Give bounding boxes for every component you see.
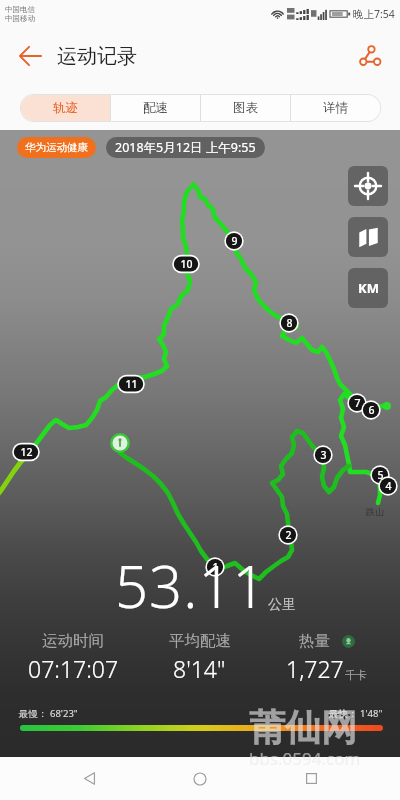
staticText: 莆仙网 <box>249 705 357 750</box>
button[interactable]: Locate <box>348 166 388 206</box>
button[interactable]: Share <box>350 36 390 76</box>
staticText: 热量 <box>299 631 330 651</box>
staticText: bbs.0594.com <box>249 747 361 770</box>
staticText: 1,727 <box>286 653 344 684</box>
staticText: 轨迹 <box>53 100 78 116</box>
button[interactable]: 轨迹 <box>21 95 110 121</box>
staticText: 运动时间 <box>42 631 104 651</box>
staticText: 运动记录 <box>57 44 137 69</box>
button[interactable]: 详情 <box>291 95 380 121</box>
staticText: 中国电信 <box>5 5 35 14</box>
staticText: 8'14" <box>173 653 226 684</box>
button[interactable]: Back <box>9 34 53 78</box>
staticText: 晚上7:54 <box>353 7 395 21</box>
button[interactable]: Home <box>178 757 222 800</box>
staticText: 7 <box>354 396 361 410</box>
staticText: 11 <box>125 377 138 391</box>
staticText: 6 <box>368 403 375 417</box>
button[interactable]: Back <box>67 757 111 800</box>
staticText: 最快： 1'48" <box>329 707 383 720</box>
staticText: 平均配速 <box>169 631 231 651</box>
button[interactable]: 配速 <box>111 95 200 121</box>
button[interactable]: Distance unit <box>348 268 388 308</box>
staticText: 10 <box>180 257 193 271</box>
button[interactable]: Recent apps <box>289 757 333 800</box>
staticText: 1 <box>212 560 219 574</box>
staticText: 3 <box>320 448 327 462</box>
staticText: 详情 <box>323 100 348 116</box>
staticText: 图表 <box>233 100 258 116</box>
staticText: 2 <box>285 528 292 542</box>
staticText: 2018年5月12日 上午9:55 <box>115 139 256 156</box>
staticText: 4 <box>385 479 392 493</box>
staticText: KM <box>358 279 379 297</box>
staticText: 华为运动健康 <box>25 141 88 154</box>
staticText: 8 <box>286 316 293 330</box>
staticText: 千卡 <box>345 668 367 682</box>
staticText: 最慢： 68'23" <box>19 707 78 720</box>
staticText: 配速 <box>143 100 168 116</box>
staticText: 跌山 <box>366 506 384 517</box>
staticText: 07:17:07 <box>28 653 119 684</box>
staticText: 中国移动 <box>5 14 35 23</box>
staticText: 53.11 <box>115 546 267 625</box>
button[interactable]: 图表 <box>201 95 290 121</box>
staticText: 9 <box>231 234 238 248</box>
button[interactable]: Map layers <box>348 217 388 257</box>
staticText: 公里 <box>268 596 296 614</box>
staticText: 12 <box>20 445 33 459</box>
staticText: 5 <box>377 468 384 482</box>
